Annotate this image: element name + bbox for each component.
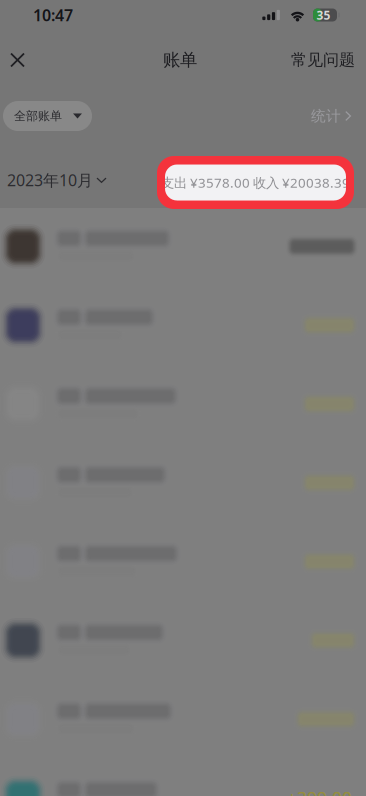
button[interactable] bbox=[0, 522, 366, 601]
staticText: 常见问题 bbox=[291, 50, 355, 70]
staticText: 35 bbox=[316, 7, 330, 23]
staticText: 2023年10月 bbox=[7, 169, 93, 191]
staticText: 统计 bbox=[311, 107, 341, 125]
button[interactable] bbox=[0, 680, 366, 759]
button[interactable]: 2023年10月 bbox=[7, 162, 107, 198]
button[interactable] bbox=[0, 443, 366, 522]
button[interactable] bbox=[0, 207, 366, 286]
staticText: 支出 ¥3578.00 收入 ¥20038.39 bbox=[165, 171, 354, 189]
button[interactable]: 统计 bbox=[311, 101, 352, 131]
staticText: +399.00 bbox=[287, 786, 352, 796]
staticText: 10:47 bbox=[33, 4, 73, 26]
button[interactable] bbox=[0, 365, 366, 443]
button[interactable]: 常见问题 bbox=[291, 40, 355, 80]
button[interactable] bbox=[0, 601, 366, 680]
button[interactable]: 全部账单 bbox=[3, 101, 92, 131]
button[interactable]: 关闭 bbox=[5, 40, 30, 79]
button[interactable] bbox=[0, 286, 366, 365]
button[interactable]: +399.00 bbox=[0, 759, 366, 796]
staticText: 账单 bbox=[163, 49, 197, 71]
staticText: 全部账单 bbox=[14, 109, 62, 123]
staticText: 支出 ¥3578.00 收入 ¥20038.39 bbox=[161, 174, 350, 191]
